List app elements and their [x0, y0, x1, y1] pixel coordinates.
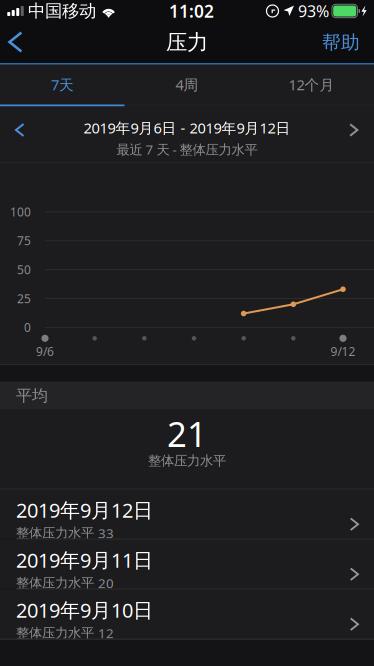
staticText: 25: [17, 290, 31, 306]
button[interactable]: 2019年9月12日: [0, 490, 374, 539]
staticText: 整体压力水平: [16, 575, 94, 591]
staticText: 21: [167, 411, 207, 457]
staticText: 12个月: [289, 75, 335, 94]
staticText: 100: [10, 204, 31, 220]
button[interactable]: Previous period: [0, 106, 35, 147]
button[interactable]: 帮助: [322, 22, 374, 63]
staticText: 4周: [175, 75, 198, 94]
staticText: 2019年9月6日 - 2019年9月12日: [83, 118, 290, 137]
button[interactable]: 12个月: [249, 64, 374, 104]
staticText: 平均: [16, 386, 48, 405]
staticText: 33: [98, 524, 114, 542]
staticText: 7天: [51, 75, 74, 94]
staticText: 2019年9月12日: [16, 497, 153, 523]
staticText: 93%: [298, 0, 329, 22]
staticText: 75: [17, 233, 31, 249]
staticText: 整体压力水平: [16, 625, 94, 641]
staticText: 中国移动: [28, 0, 96, 22]
staticText: 20: [98, 574, 114, 592]
staticText: 11:02: [169, 0, 214, 22]
button[interactable]: 4周: [125, 64, 249, 104]
button[interactable]: 2019年9月11日: [0, 540, 374, 589]
staticText: 9/6: [36, 343, 54, 359]
staticText: 压力: [166, 29, 208, 56]
staticText: 9/12: [330, 343, 355, 359]
staticText: 2019年9月11日: [16, 547, 153, 573]
staticText: 最近 7 天 - 整体压力水平: [116, 140, 257, 158]
button[interactable]: 2019年9月10日: [0, 590, 374, 639]
staticText: 0: [24, 319, 31, 335]
button[interactable]: Back: [0, 22, 43, 63]
staticText: 2019年9月10日: [16, 597, 153, 623]
staticText: 帮助: [322, 31, 360, 54]
button[interactable]: Next period: [339, 106, 374, 147]
staticText: 12: [98, 624, 114, 642]
button[interactable]: 7天: [0, 64, 125, 104]
staticText: 50: [17, 262, 31, 277]
staticText: 整体压力水平: [16, 525, 94, 541]
staticText: 整体压力水平: [148, 453, 226, 469]
